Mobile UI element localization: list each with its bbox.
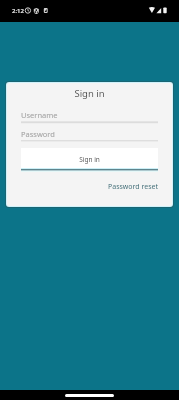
button[interactable]: Password	[21, 129, 158, 143]
staticText: Password	[21, 129, 55, 139]
staticText: Sign in	[7, 87, 172, 100]
staticText: 2:12	[12, 7, 24, 15]
button[interactable]: Password reset	[108, 182, 159, 192]
button[interactable]: Sign in	[21, 148, 158, 172]
staticText: Sign in	[21, 155, 158, 164]
button[interactable]: Username	[21, 110, 158, 124]
staticText: Username	[21, 110, 58, 120]
